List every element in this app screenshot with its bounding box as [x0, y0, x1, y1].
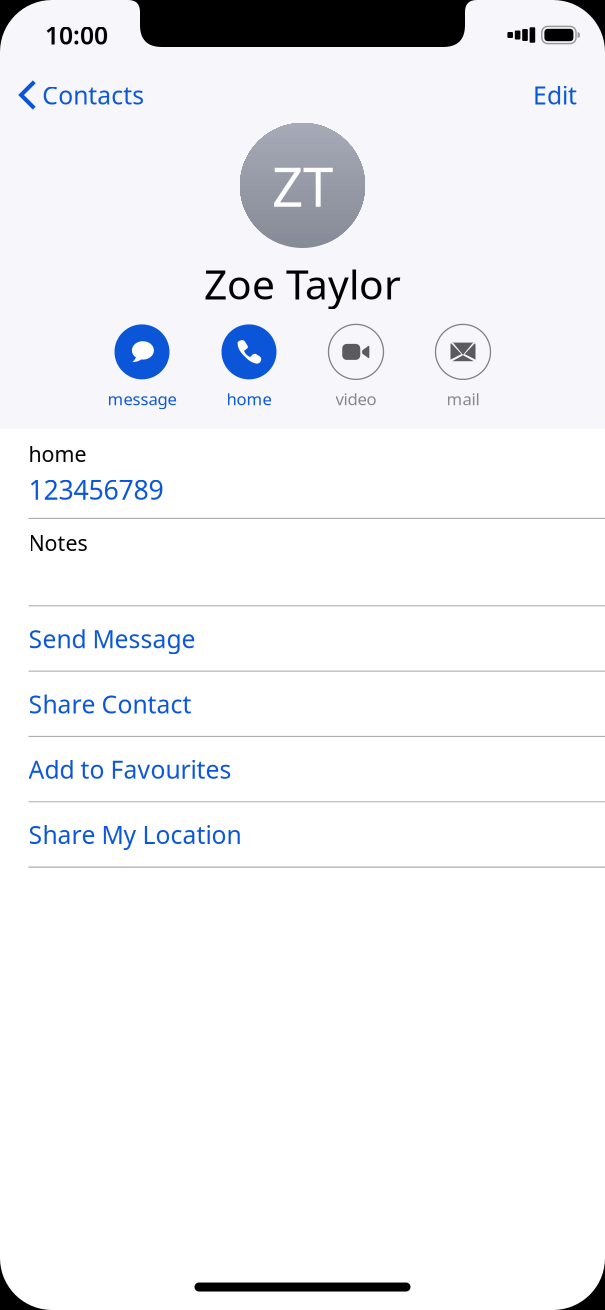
staticText: Share Contact [28, 687, 191, 721]
staticText: message [107, 387, 176, 410]
staticText: Edit [533, 78, 577, 112]
staticText: Contacts [42, 78, 144, 112]
staticText: home [226, 387, 271, 410]
staticText: 123456789 [28, 471, 163, 507]
button[interactable]: video [302, 324, 409, 410]
staticText: home [28, 439, 86, 468]
button[interactable]: Send Message [0, 607, 605, 672]
button[interactable]: Add to Favourites [0, 737, 605, 802]
staticText: Send Message [28, 622, 195, 655]
button[interactable]: Share My Location [0, 802, 605, 868]
button[interactable]: Contacts [0, 70, 156, 120]
staticText: ZT [272, 148, 333, 223]
button[interactable]: Share Contact [0, 672, 605, 737]
button[interactable]: mail [409, 324, 516, 410]
staticText: Notes [28, 528, 87, 557]
staticText: mail [446, 387, 479, 410]
button[interactable]: Edit [521, 70, 605, 120]
staticText: video [335, 387, 376, 410]
button[interactable]: message [88, 324, 195, 410]
staticText: Add to Favourites [28, 752, 231, 786]
button[interactable]: home [0, 429, 605, 519]
staticText: Zoe Taylor [204, 256, 401, 311]
staticText: Share My Location [28, 818, 241, 851]
button[interactable]: home [195, 324, 302, 410]
staticText: 10:00 [45, 18, 108, 52]
